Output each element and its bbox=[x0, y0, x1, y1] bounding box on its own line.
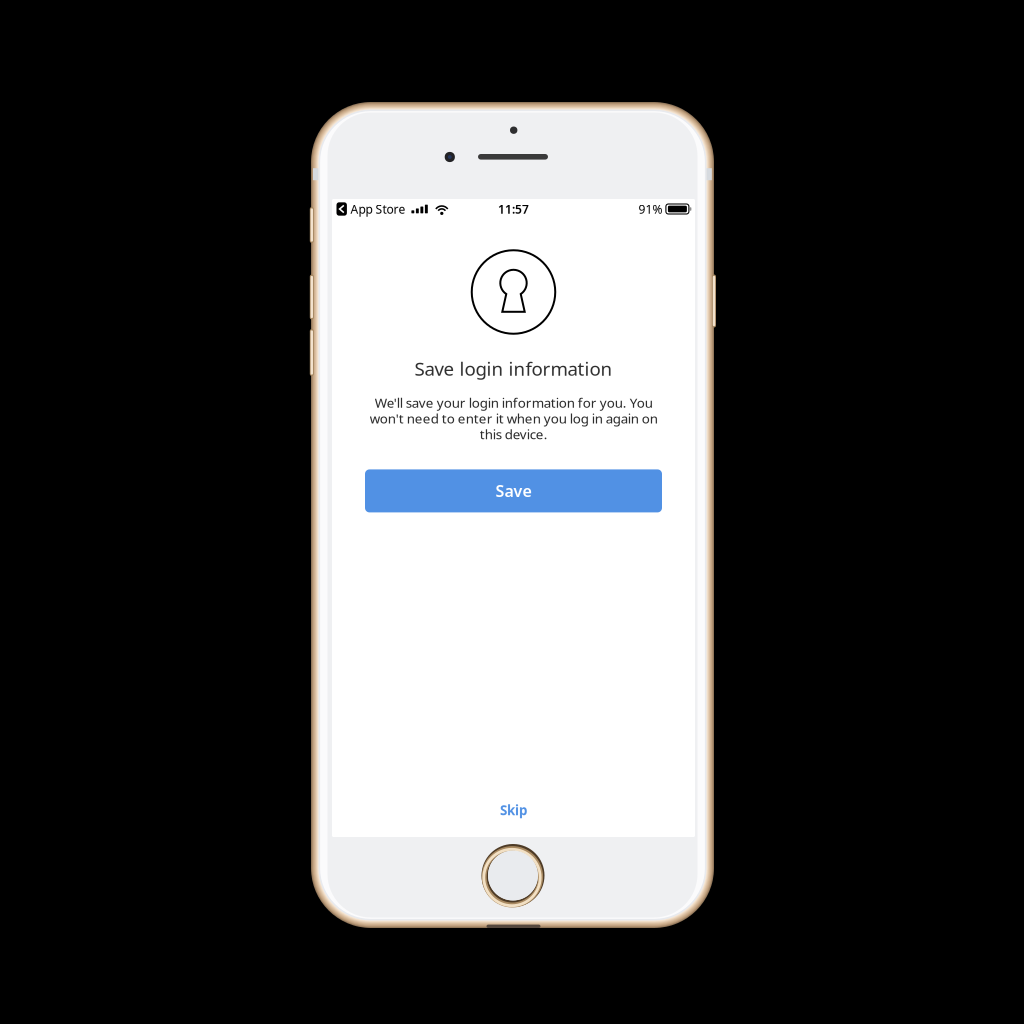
button[interactable]: Skip bbox=[332, 795, 695, 825]
staticText: Skip bbox=[500, 801, 527, 819]
button[interactable]: Save bbox=[365, 469, 662, 512]
staticText: 91% bbox=[638, 201, 662, 217]
staticText: 11:57 bbox=[498, 201, 529, 217]
staticText: Save bbox=[495, 480, 531, 501]
staticText: App Store bbox=[350, 201, 405, 217]
staticText: We'll save your login information for yo… bbox=[369, 394, 657, 443]
staticText: Save login information bbox=[414, 356, 612, 381]
button[interactable]: Back to App Store bbox=[336, 201, 405, 217]
